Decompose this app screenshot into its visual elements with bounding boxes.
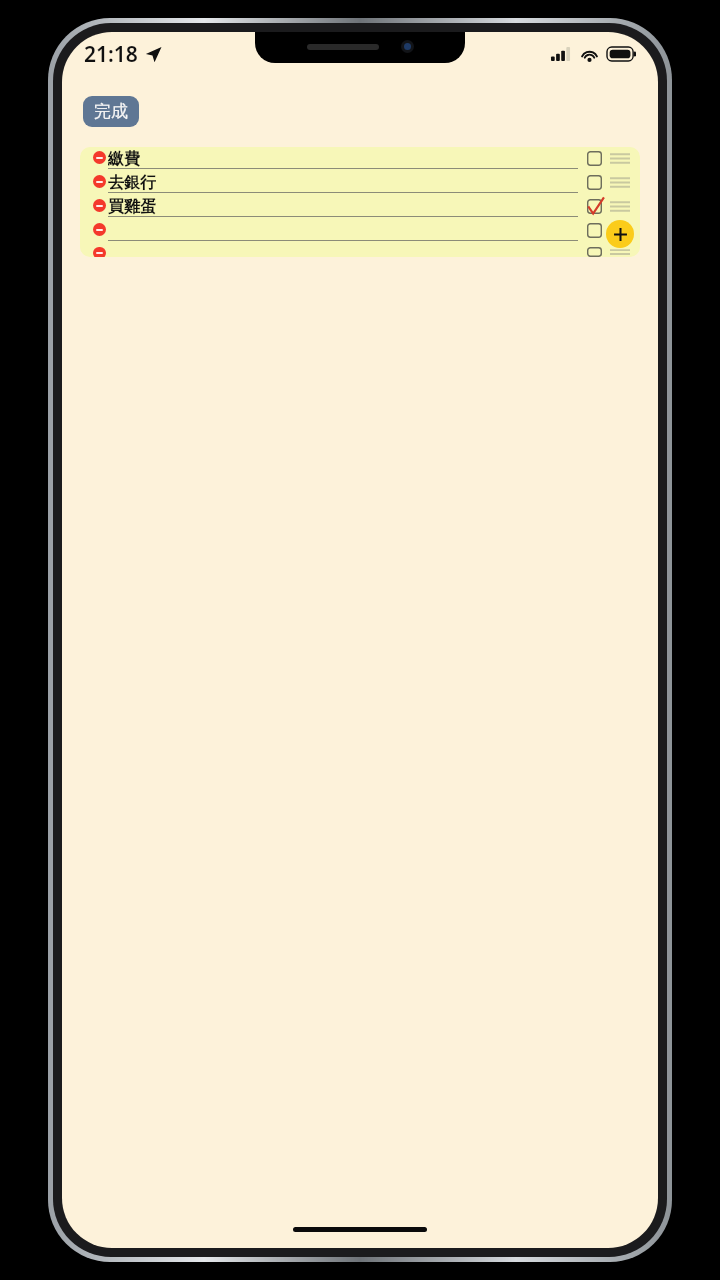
button[interactable]: Toggle done	[586, 246, 603, 257]
button[interactable]: Reorder	[610, 200, 630, 213]
button[interactable]: Delete row	[80, 149, 640, 173]
staticText: 去銀行	[108, 173, 156, 192]
button[interactable]: Reorder	[610, 176, 630, 189]
button[interactable]: Toggle done	[586, 198, 603, 215]
staticText: 完成	[94, 101, 128, 122]
staticText: 21:18	[84, 40, 138, 69]
button[interactable]: Delete row	[80, 173, 640, 197]
button[interactable]: Reorder	[610, 248, 630, 257]
button[interactable]: Delete row	[93, 199, 106, 212]
button[interactable]: Delete row	[80, 245, 640, 257]
button[interactable]: Delete row	[80, 197, 640, 221]
button[interactable]: Delete row	[93, 247, 106, 257]
button[interactable]: Reorder	[610, 152, 630, 165]
button[interactable]: Delete row	[80, 221, 640, 245]
button[interactable]: Toggle done	[586, 150, 603, 167]
staticText: 繳費	[108, 149, 140, 168]
button[interactable]: Add item	[606, 220, 634, 248]
button[interactable]: Toggle done	[586, 174, 603, 191]
button[interactable]: 完成	[83, 96, 139, 127]
button[interactable]: Toggle done	[586, 222, 603, 239]
button[interactable]: Reorder	[610, 224, 630, 237]
button[interactable]: Delete row	[93, 175, 106, 188]
staticText: 買雞蛋	[108, 197, 156, 216]
button[interactable]: Delete row	[93, 223, 106, 236]
button[interactable]: Delete row	[93, 151, 106, 164]
